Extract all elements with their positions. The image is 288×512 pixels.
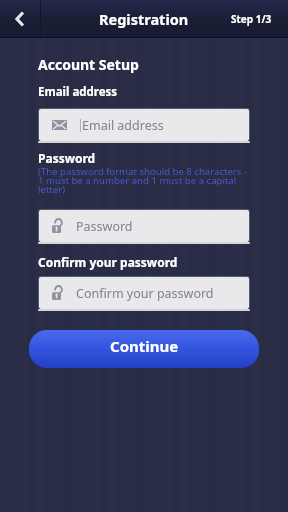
button[interactable] — [0, 0, 40, 38]
staticText: Continue — [110, 336, 179, 356]
button[interactable]: Confirm your password — [38, 276, 250, 311]
button[interactable]: Password — [38, 209, 250, 244]
staticText: (The password format should be 8 charact… — [38, 165, 248, 196]
button[interactable]: Continue — [29, 330, 259, 368]
staticText: Confirm your password — [38, 254, 178, 270]
staticText: Password — [76, 218, 133, 235]
staticText: Step 1/3 — [231, 12, 272, 26]
staticText: Registration — [99, 9, 189, 29]
button[interactable]: Email address — [38, 108, 250, 143]
staticText: Email address — [82, 117, 164, 134]
staticText: Account Setup — [38, 55, 139, 74]
staticText: Confirm your password — [76, 285, 214, 302]
staticText: Email address — [38, 84, 118, 100]
staticText: Password — [38, 150, 96, 166]
